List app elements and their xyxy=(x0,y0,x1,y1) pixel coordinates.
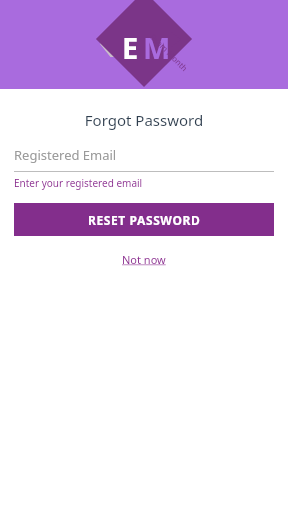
button[interactable]: RESET PASSWORD xyxy=(14,203,274,236)
staticText: Registered Email xyxy=(14,146,117,164)
staticText: Not now xyxy=(122,252,166,267)
staticText: RESET PASSWORD xyxy=(88,212,201,228)
staticText: Enter your registered email xyxy=(14,176,143,190)
staticText: Forgot Password xyxy=(0,110,288,130)
staticText: Exam Month xyxy=(148,31,191,74)
staticText: E xyxy=(122,28,139,67)
staticText: M xyxy=(143,28,171,67)
button[interactable]: Registered Email xyxy=(14,146,274,172)
button[interactable]: Not now xyxy=(116,250,172,269)
